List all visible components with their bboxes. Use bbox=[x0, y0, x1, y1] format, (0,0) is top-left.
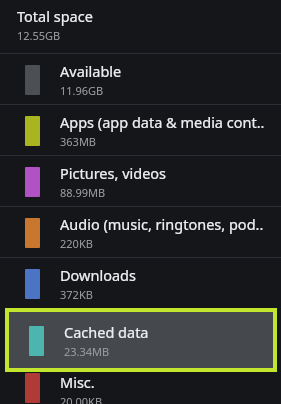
staticText: 220KB bbox=[60, 236, 93, 251]
staticText: Downloads bbox=[60, 265, 136, 285]
staticText: 372KB bbox=[60, 287, 93, 302]
staticText: 20.00KB bbox=[60, 394, 103, 404]
staticText: 11.96GB bbox=[60, 83, 104, 98]
staticText: Apps (app data & media cont.. bbox=[60, 112, 265, 132]
staticText: Available bbox=[60, 61, 122, 81]
button[interactable]: Apps (app data & media cont.. bbox=[0, 105, 281, 155]
button[interactable]: Total space bbox=[0, 0, 281, 49]
staticText: Audio (music, ringtones, pod.. bbox=[60, 214, 264, 234]
staticText: Misc. bbox=[60, 372, 95, 392]
button[interactable]: Available bbox=[0, 54, 281, 104]
button[interactable]: Downloads bbox=[0, 258, 281, 308]
button[interactable]: Pictures, videos bbox=[0, 156, 281, 206]
button[interactable]: Audio (music, ringtones, pod.. bbox=[0, 207, 281, 257]
staticText: 88.99MB bbox=[60, 185, 106, 200]
staticText: Pictures, videos bbox=[60, 163, 167, 183]
staticText: 12.55GB bbox=[17, 28, 61, 43]
staticText: 363MB bbox=[60, 134, 97, 149]
staticText: Cached data bbox=[64, 322, 149, 342]
staticText: Total space bbox=[17, 6, 93, 26]
button[interactable]: Cached data bbox=[9, 312, 273, 368]
button[interactable]: Misc. bbox=[0, 372, 281, 404]
staticText: 23.34MB bbox=[64, 344, 110, 359]
